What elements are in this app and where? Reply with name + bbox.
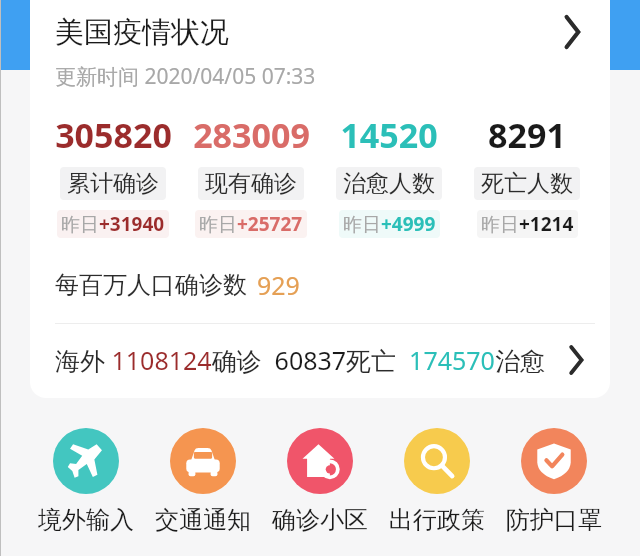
staticText: 昨日+4999 bbox=[343, 211, 436, 237]
staticText: 8291 bbox=[488, 112, 566, 158]
staticText: 昨日+25727 bbox=[199, 211, 303, 237]
button[interactable]: 美国疫情状况 bbox=[30, 0, 610, 64]
staticText: 防护口罩 bbox=[506, 505, 602, 535]
staticText: 283009 bbox=[193, 112, 310, 158]
staticText: 305820 bbox=[55, 112, 172, 158]
staticText: 交通通知 bbox=[155, 505, 251, 535]
other: 交通通知 bbox=[170, 428, 236, 494]
other: 境外输入 bbox=[53, 428, 119, 494]
other: 出行政策 bbox=[404, 428, 470, 494]
staticText: 现有确诊 bbox=[205, 169, 297, 198]
button[interactable]: 出行政策 bbox=[381, 428, 493, 535]
button[interactable]: 14520 bbox=[320, 112, 458, 238]
button[interactable]: 美国疫情状况 bbox=[30, 0, 610, 398]
staticText: 出行政策 bbox=[389, 505, 485, 535]
button[interactable]: 境外输入 bbox=[30, 428, 142, 535]
button[interactable]: 305820 bbox=[44, 112, 182, 238]
staticText: 境外输入 bbox=[38, 505, 134, 535]
button[interactable]: 每百万人口确诊数 bbox=[55, 268, 300, 302]
staticText: 死亡人数 bbox=[481, 169, 573, 198]
staticText: 海外 1108124确诊 60837死亡 174570治愈 bbox=[55, 343, 545, 377]
button[interactable]: 283009 bbox=[182, 112, 320, 238]
staticText: 累计确诊 bbox=[67, 169, 159, 198]
other: 防护口罩 bbox=[521, 428, 587, 494]
staticText: 治愈人数 bbox=[343, 169, 435, 198]
staticText: 929 bbox=[257, 268, 300, 302]
other: 确诊小区 bbox=[287, 428, 353, 494]
staticText: 美国疫情状况 bbox=[55, 14, 229, 51]
staticText: 确诊小区 bbox=[272, 505, 368, 535]
button[interactable]: 防护口罩 bbox=[498, 428, 610, 535]
staticText: 14520 bbox=[340, 112, 438, 158]
button[interactable]: 确诊小区 bbox=[264, 428, 376, 535]
staticText: 更新时间 2020/04/05 07:33 bbox=[55, 62, 316, 91]
button[interactable]: 海外 1108124确诊 60837死亡 174570治愈 bbox=[30, 336, 610, 384]
other: 查看详情 bbox=[550, 10, 594, 54]
staticText: 昨日+1214 bbox=[481, 211, 574, 237]
staticText: 昨日+31940 bbox=[61, 211, 165, 237]
staticText: 每百万人口确诊数 bbox=[55, 270, 247, 300]
button[interactable]: 交通通知 bbox=[147, 428, 259, 535]
button[interactable]: 8291 bbox=[458, 112, 596, 238]
